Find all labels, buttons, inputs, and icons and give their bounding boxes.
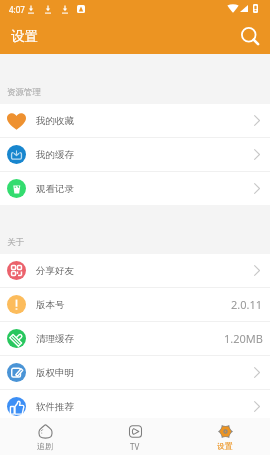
button[interactable]: 版权申明 — [0, 356, 270, 389]
button[interactable]: 设置 — [180, 418, 270, 455]
button[interactable]: 我的缓存 — [0, 138, 270, 171]
staticText: TV — [130, 441, 140, 452]
staticText: 观看记录 — [36, 183, 74, 195]
staticText: 设置 — [11, 28, 38, 45]
staticText: 追剧 — [37, 441, 53, 451]
staticText: 我的缓存 — [36, 149, 74, 161]
button[interactable]: 软件推荐 — [0, 390, 270, 423]
button[interactable]: 观看记录 — [0, 172, 270, 205]
staticText: 软件推荐 — [36, 401, 74, 413]
staticText: 设置 — [217, 441, 233, 451]
button[interactable]: 我的收藏 — [0, 104, 270, 137]
staticText: 1.20MB — [224, 331, 263, 346]
staticText: 4:07 — [9, 4, 25, 15]
button[interactable]: 版本号 — [0, 288, 270, 321]
staticText: 我的收藏 — [36, 115, 74, 127]
staticText: 关于 — [7, 237, 24, 248]
button[interactable]: TV — [90, 418, 180, 455]
button[interactable]: 追剧 — [0, 418, 90, 455]
staticText: 资源管理 — [7, 87, 41, 98]
staticText: 版权申明 — [36, 367, 74, 379]
staticText: 清理缓存 — [36, 333, 74, 345]
button[interactable]: 清理缓存 — [0, 322, 270, 355]
staticText: 版本号 — [36, 299, 65, 311]
button[interactable]: 分享好友 — [0, 254, 270, 287]
staticText: 2.0.11 — [231, 297, 263, 312]
staticText: 分享好友 — [36, 265, 74, 277]
button[interactable]: Search — [237, 23, 263, 49]
